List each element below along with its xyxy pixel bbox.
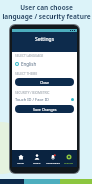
staticText: SELECT LANGUAGE — [15, 54, 44, 58]
staticText: Home — [17, 161, 24, 164]
staticText: Save Changes — [33, 107, 57, 112]
staticText: Profile — [33, 161, 41, 164]
button[interactable]: Profile — [29, 150, 45, 167]
staticText: SELECT THEME — [15, 72, 38, 76]
staticText: Settings — [64, 161, 74, 164]
staticText: User can choose — [20, 3, 73, 12]
staticText: Touch ID / Face ID — [15, 97, 49, 102]
staticText: SECURITY / BIOMETRIC — [15, 91, 50, 95]
button[interactable]: English — [15, 61, 74, 67]
button[interactable]: Save Changes — [15, 105, 74, 113]
button[interactable]: Touch ID / Face ID — [15, 97, 74, 102]
button[interactable]: Home — [12, 150, 29, 167]
button[interactable]: Close — [15, 78, 74, 86]
staticText: English — [21, 61, 37, 67]
staticText: Notifications — [46, 161, 61, 164]
staticText: Close — [40, 80, 50, 85]
button[interactable]: Settings — [61, 150, 77, 167]
staticText: Settings — [35, 36, 55, 43]
staticText: language / security feature — [2, 12, 91, 21]
button[interactable]: Notifications — [45, 150, 61, 167]
